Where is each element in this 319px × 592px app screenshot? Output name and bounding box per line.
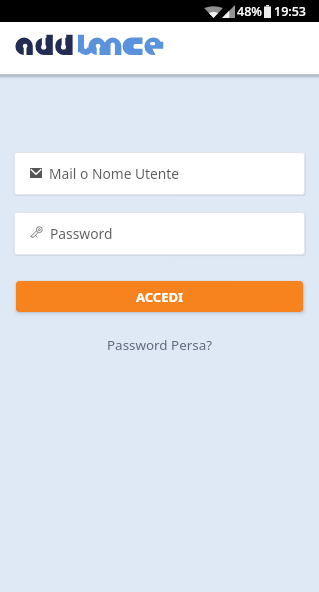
button[interactable]: Mail o Nome Utente: [14, 152, 305, 195]
staticText: 48%: [237, 3, 262, 20]
staticText: Mail o Nome Utente: [49, 164, 180, 183]
button[interactable]: Password: [14, 212, 305, 255]
staticText: 19:53: [274, 3, 307, 20]
button[interactable]: ACCEDI: [16, 281, 303, 312]
staticText: ACCEDI: [136, 288, 184, 306]
button[interactable]: Password Persa?: [0, 336, 319, 354]
staticText: Password: [50, 224, 113, 243]
